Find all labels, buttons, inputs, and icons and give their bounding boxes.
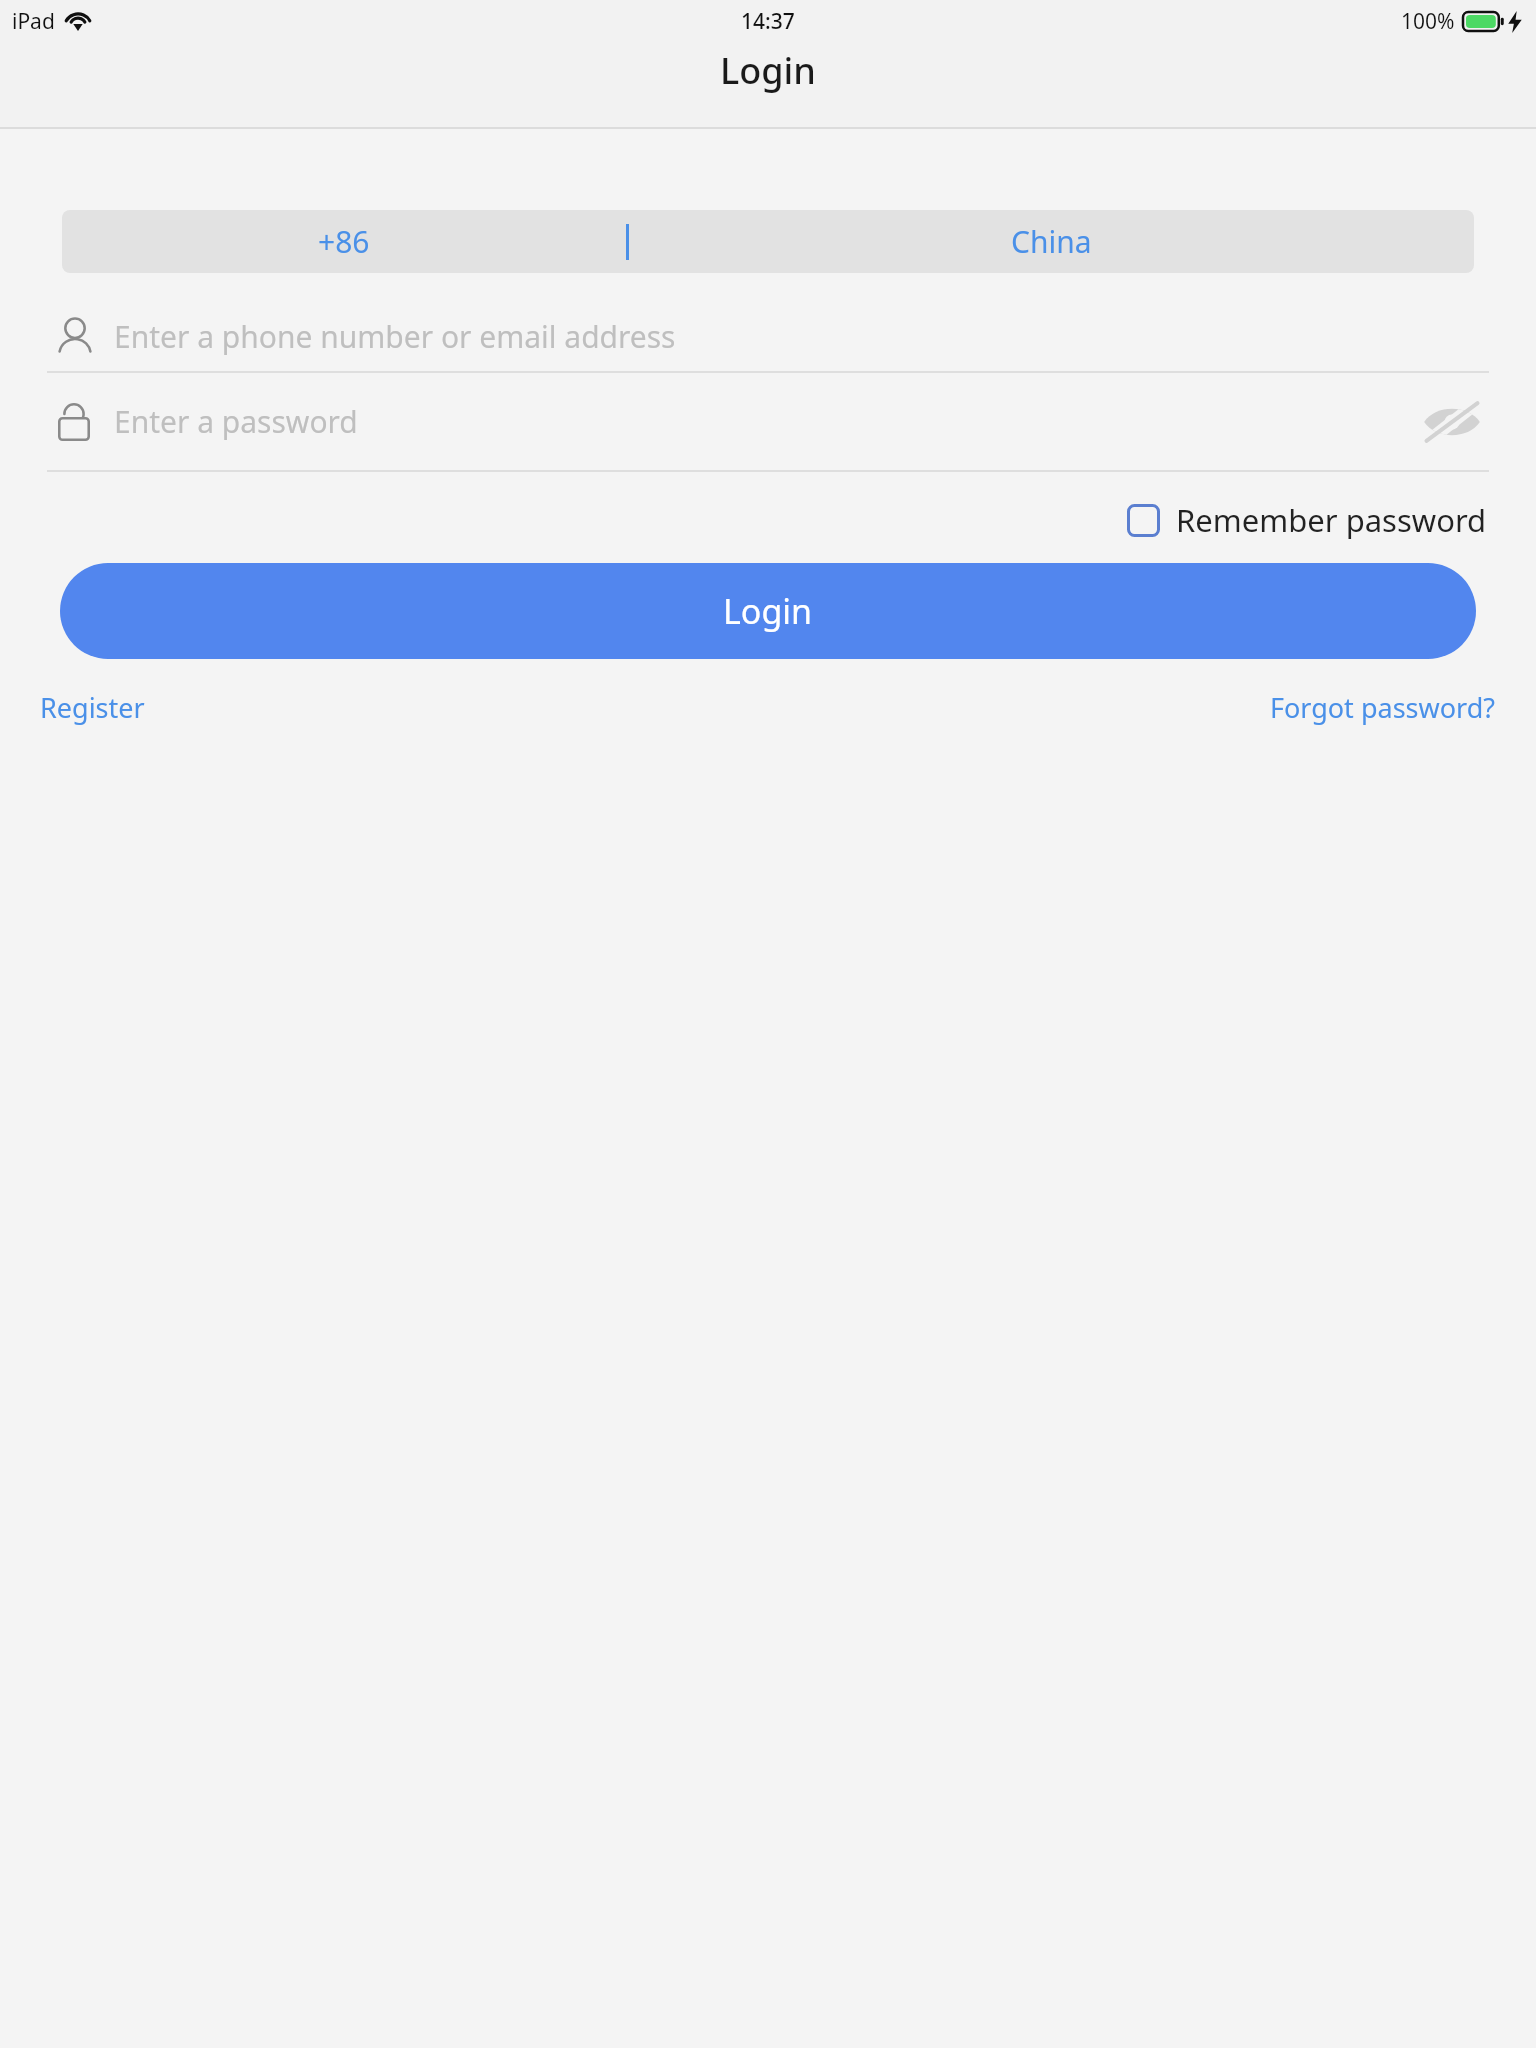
- button[interactable]: +86: [62, 210, 1474, 273]
- staticText: Login: [720, 46, 816, 95]
- staticText: iPad: [12, 7, 55, 36]
- staticText: Register: [40, 689, 145, 726]
- staticText: +86: [318, 221, 370, 262]
- staticText: 100%: [1401, 7, 1455, 36]
- button[interactable]: Login: [60, 563, 1476, 659]
- button[interactable]: Show password: [1415, 385, 1489, 459]
- button[interactable]: Register: [0, 683, 159, 732]
- button[interactable]: Enter a phone number or email address: [47, 301, 1489, 373]
- button[interactable]: Forgot password?: [1255, 683, 1536, 732]
- staticText: Enter a password: [114, 401, 358, 442]
- staticText: Forgot password?: [1269, 689, 1495, 726]
- button[interactable]: Remember password: [1119, 491, 1495, 549]
- staticText: China: [1011, 221, 1092, 262]
- staticText: Enter a phone number or email address: [114, 316, 676, 357]
- staticText: Remember password: [1176, 499, 1487, 541]
- staticText: Login: [723, 588, 813, 634]
- button[interactable]: Enter a password: [114, 373, 1415, 470]
- staticText: 14:37: [741, 7, 795, 36]
